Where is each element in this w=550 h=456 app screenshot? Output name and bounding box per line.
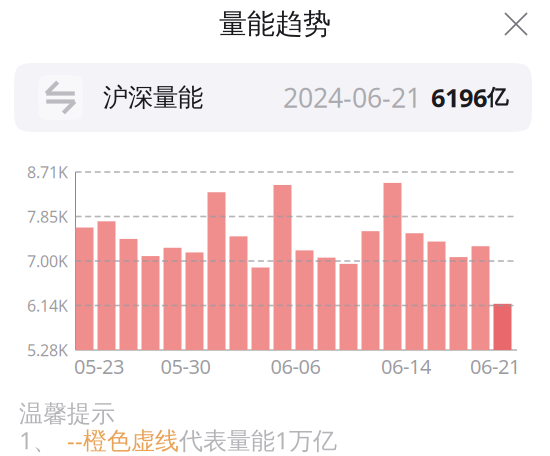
staticText: 2024-06-21	[283, 80, 421, 115]
staticText: 7.85K	[27, 206, 68, 227]
staticText: 6.14K	[27, 295, 68, 316]
staticText: 05-23	[74, 353, 124, 380]
staticText: 06-14	[381, 353, 431, 380]
staticText: --橙色虚线	[67, 424, 179, 456]
staticText: 1、	[19, 424, 57, 456]
staticText: 06-06	[270, 353, 320, 380]
staticText: 8.71K	[27, 161, 68, 183]
staticText: 沪深量能	[103, 82, 203, 113]
staticText: 量能趋势	[219, 7, 331, 41]
staticText: 5.28K	[27, 339, 68, 361]
button[interactable]: Close	[495, 3, 537, 45]
staticText: 6196	[431, 81, 487, 114]
staticText: 代表量能1万亿	[179, 424, 337, 456]
staticText: 温馨提示	[19, 399, 115, 428]
staticText: 亿	[487, 84, 508, 111]
staticText: 7.00K	[27, 250, 68, 272]
staticText: 05-30	[160, 353, 210, 380]
staticText: 06-21	[470, 353, 520, 380]
